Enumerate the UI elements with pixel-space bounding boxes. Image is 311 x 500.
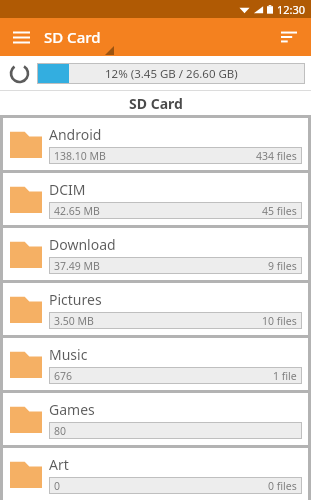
staticText: Games [49, 400, 95, 419]
button[interactable]: Refresh [6, 60, 32, 86]
staticText: SD Card [44, 27, 101, 47]
button[interactable]: DCIM [3, 173, 308, 225]
button[interactable]: Sort [274, 22, 304, 52]
staticText: 676 [54, 369, 73, 383]
staticText: Android [49, 125, 102, 144]
button[interactable]: 12% (3.45 GB / 26.60 GB) [37, 63, 305, 84]
staticText: 1 file [273, 369, 297, 383]
staticText: 12% (3.45 GB / 26.60 GB) [105, 66, 238, 82]
button[interactable]: Download [3, 228, 308, 280]
staticText: 434 files [256, 149, 297, 163]
button[interactable]: SD Card [44, 18, 101, 56]
staticText: SD Card [129, 94, 183, 113]
staticText: 80 [54, 424, 67, 438]
staticText: 45 files [262, 204, 297, 218]
button[interactable]: Art [3, 448, 308, 500]
staticText: 42.65 MB [54, 204, 100, 218]
staticText: Art [49, 455, 69, 474]
staticText: 10 files [262, 314, 297, 328]
button[interactable]: Open navigation menu [6, 22, 36, 52]
staticText: 9 files [268, 259, 297, 273]
staticText: 3.50 MB [54, 314, 94, 328]
button[interactable]: Android [3, 118, 308, 170]
staticText: DCIM [49, 180, 86, 199]
button[interactable]: Games [3, 393, 308, 445]
staticText: Pictures [49, 290, 102, 309]
staticText: 12:30 [277, 2, 306, 17]
button[interactable]: Music [3, 338, 308, 390]
staticText: 0 files [268, 479, 297, 493]
staticText: 0 [54, 479, 61, 493]
button[interactable]: Pictures [3, 283, 308, 335]
staticText: 138.10 MB [54, 149, 106, 163]
staticText: 37.49 MB [54, 259, 100, 273]
staticText: Download [49, 235, 116, 254]
staticText: Music [49, 345, 88, 364]
